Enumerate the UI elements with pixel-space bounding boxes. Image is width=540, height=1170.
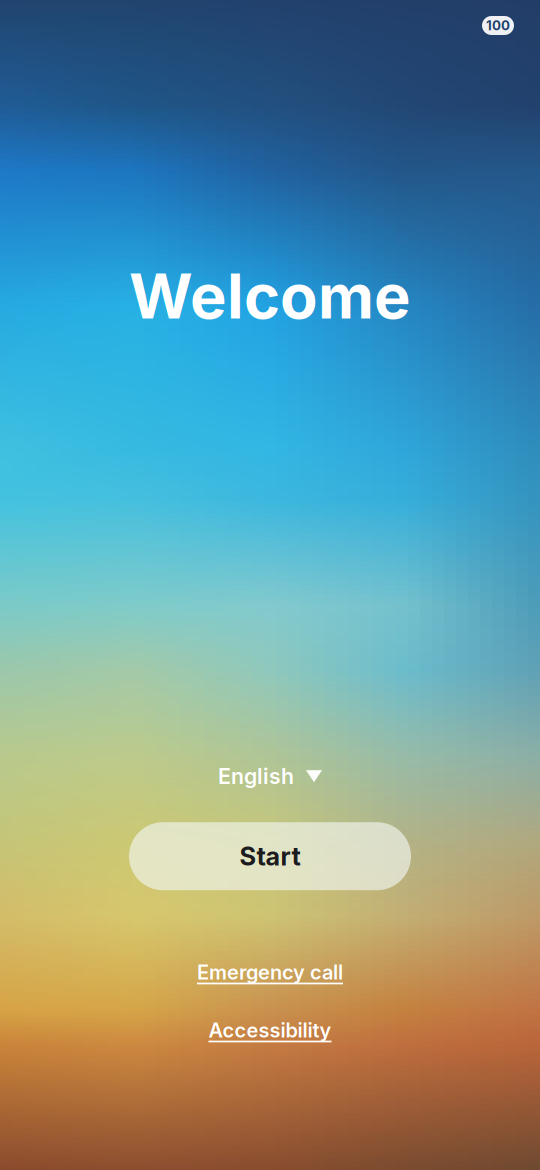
staticText: 100 — [486, 17, 510, 33]
button[interactable]: Emergency call — [197, 959, 343, 985]
staticText: Accessibility — [208, 1018, 331, 1042]
button[interactable]: Start — [129, 822, 411, 890]
button[interactable]: Battery 100 percent — [482, 16, 514, 35]
staticText: Emergency call — [197, 960, 343, 984]
staticText: Welcome — [129, 259, 411, 333]
staticText: English — [218, 763, 294, 789]
button[interactable]: English — [218, 761, 322, 791]
staticText: Start — [239, 841, 300, 872]
button[interactable]: Accessibility — [208, 1017, 331, 1043]
